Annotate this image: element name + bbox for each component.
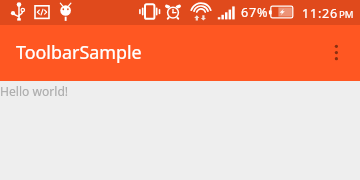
button[interactable]: More options: [316, 29, 356, 69]
staticText: ToolbarSample: [16, 40, 142, 64]
staticText: PM: [339, 8, 354, 21]
staticText: Hello world!: [0, 83, 69, 99]
staticText: 11:26: [302, 5, 338, 22]
staticText: 67%: [241, 4, 269, 21]
